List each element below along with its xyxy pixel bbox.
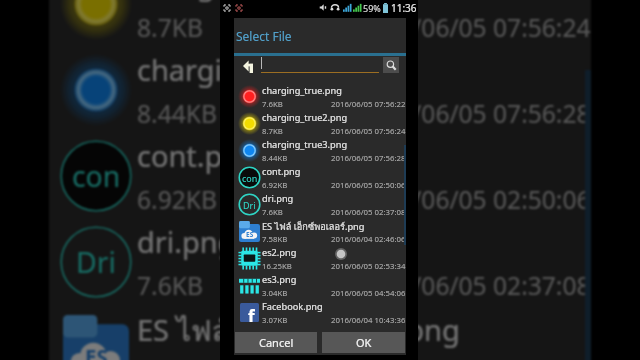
- staticText: dri.png: [262, 192, 294, 205]
- staticText: 7.6KB: [262, 99, 283, 110]
- staticText: 11:36: [391, 1, 417, 15]
- staticText: 2016/06/04 02:46:06: [356, 355, 591, 360]
- staticText: charging_true3.png: [137, 50, 406, 89]
- staticText: 2016/06/04 02:46:06: [331, 234, 406, 245]
- staticText: 7.58KB: [262, 234, 288, 245]
- staticText: 6.92KB: [262, 180, 288, 191]
- staticText: 2016/06/05 02:50:06: [331, 180, 406, 191]
- staticText: 2016/06/05 07:56:24: [331, 126, 406, 137]
- staticText: charging_true2.png: [262, 111, 348, 124]
- staticText: es2.png: [262, 246, 297, 259]
- button[interactable]: es2.png: [234, 245, 406, 272]
- staticText: 6.92KB: [137, 183, 217, 216]
- staticText: Dri: [243, 199, 256, 211]
- staticText: 2016/06/05 02:53:34: [331, 261, 406, 272]
- button[interactable]: ES: [234, 218, 406, 245]
- staticText: 2016/06/05 04:54:06: [331, 288, 406, 299]
- staticText: 3.04KB: [262, 288, 288, 299]
- button[interactable]: charging_true.png: [234, 83, 406, 110]
- button[interactable]: con: [234, 164, 406, 191]
- staticText: 3.07KB: [262, 315, 288, 326]
- button[interactable]: Cancel: [235, 332, 317, 353]
- staticText: 16.25KB: [262, 261, 292, 272]
- staticText: Cancel: [259, 335, 294, 350]
- staticText: Select File: [236, 28, 292, 44]
- staticText: f: [248, 305, 255, 322]
- staticText: es3.png: [262, 273, 297, 286]
- staticText: 8.44KB: [262, 153, 288, 164]
- staticText: 2016/06/05 02:37:08: [356, 269, 591, 302]
- staticText: Facebook.png: [262, 300, 323, 313]
- staticText: 8.7KB: [137, 11, 203, 44]
- staticText: 2016/06/05 07:56:24: [356, 11, 591, 44]
- staticText: 2016/06/05 02:37:08: [331, 207, 406, 218]
- staticText: Dri: [76, 243, 116, 282]
- staticText: charging_true2.png: [137, 0, 406, 3]
- staticText: 2016/06/05 07:56:28: [356, 97, 591, 130]
- staticText: charging_true.png: [262, 84, 342, 97]
- staticText: ES ไฟล์ เอ็กซ์พอเลอร์.png: [137, 308, 460, 354]
- staticText: 2016/06/04 10:43:36: [331, 315, 406, 326]
- button[interactable]: charging_true2.png: [234, 110, 406, 137]
- staticText: OK: [356, 335, 372, 350]
- staticText: cont.png: [262, 165, 301, 178]
- staticText: ES: [85, 343, 108, 360]
- button[interactable]: Search: [383, 57, 399, 73]
- staticText: charging_true3.png: [262, 138, 348, 151]
- staticText: 59%: [363, 2, 381, 14]
- staticText: 8.7KB: [262, 126, 283, 137]
- staticText: ES: [246, 230, 254, 239]
- staticText: 7.6KB: [262, 207, 283, 218]
- button[interactable]: f: [234, 299, 406, 326]
- button[interactable]: Dri: [234, 191, 406, 218]
- button[interactable]: charging_true3.png: [234, 137, 406, 164]
- button[interactable]: es3.png: [234, 272, 406, 299]
- staticText: dri.png: [137, 222, 236, 261]
- staticText: 7.6KB: [137, 269, 203, 302]
- staticText: 8.44KB: [137, 97, 217, 130]
- staticText: 2016/06/05 07:56:22: [331, 99, 406, 110]
- staticText: con: [72, 157, 121, 196]
- staticText: 2016/06/05 07:56:28: [331, 153, 406, 164]
- button[interactable]: Up one level: [239, 55, 257, 77]
- staticText: ES ไฟล์ เอ็กซ์พอเลอร์.png: [262, 219, 365, 234]
- staticText: con: [242, 172, 258, 184]
- staticText: cont.png: [137, 136, 259, 175]
- staticText: 2016/06/05 02:50:06: [356, 183, 591, 216]
- button[interactable]: OK: [322, 332, 405, 353]
